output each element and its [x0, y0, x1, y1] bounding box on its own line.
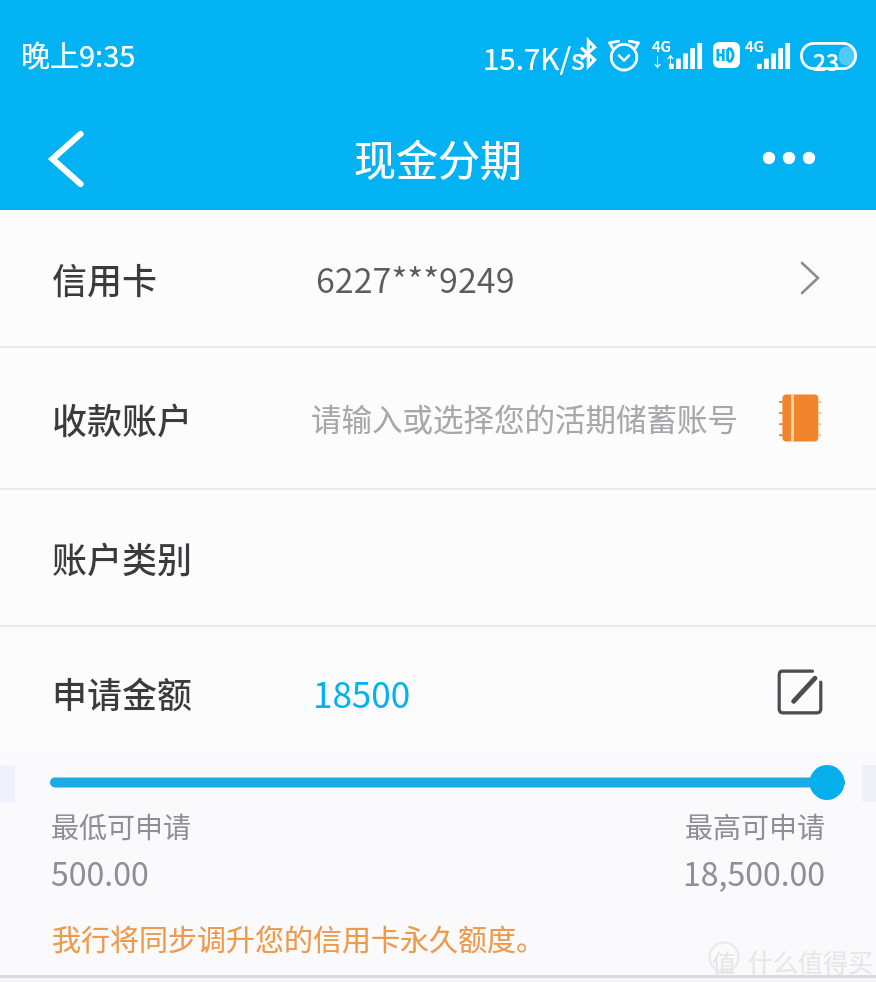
staticText: 什么值得买 [748, 943, 874, 979]
staticText: 晚上9:35 [21, 33, 136, 75]
staticText: 500.00 [51, 849, 149, 895]
staticText: 收款账户 [52, 393, 193, 444]
button[interactable]: 申请金额 [0, 632, 876, 752]
staticText: 18,500.00 [683, 849, 826, 895]
staticText: 6227***9249 [316, 254, 515, 303]
button[interactable]: 收款账户 [0, 348, 876, 488]
staticText: 15.7K/s [483, 36, 585, 79]
staticText: 4G [652, 35, 672, 57]
staticText: 最高可申请 [685, 806, 826, 847]
staticText: 现金分期 [354, 127, 523, 188]
staticText: 值 [712, 944, 736, 979]
button[interactable]: 信用卡 [0, 210, 876, 346]
button[interactable]: Select credit card [786, 248, 846, 308]
staticText: 最低可申请 [51, 806, 192, 847]
staticText: 账户类别 [52, 532, 193, 583]
staticText: 23 [813, 44, 840, 77]
staticText: 请输入或选择您的活期储蓄账号 [311, 396, 738, 440]
staticText: 18500 [313, 667, 411, 718]
staticText: 申请金额 [52, 667, 193, 718]
button[interactable]: 账户类别 [0, 490, 876, 625]
button[interactable]: Edit amount [768, 660, 832, 724]
button[interactable]: Amount slider [0, 752, 876, 812]
button[interactable]: Back [33, 123, 105, 195]
staticText: 信用卡 [52, 253, 158, 304]
button[interactable]: More options [752, 132, 832, 184]
staticText: 4G [745, 35, 765, 57]
button[interactable]: Choose contact account [770, 387, 832, 449]
staticText: 我行将同步调升您的信用卡永久额度。 [52, 917, 546, 959]
staticText: ↓↑ [651, 51, 678, 70]
